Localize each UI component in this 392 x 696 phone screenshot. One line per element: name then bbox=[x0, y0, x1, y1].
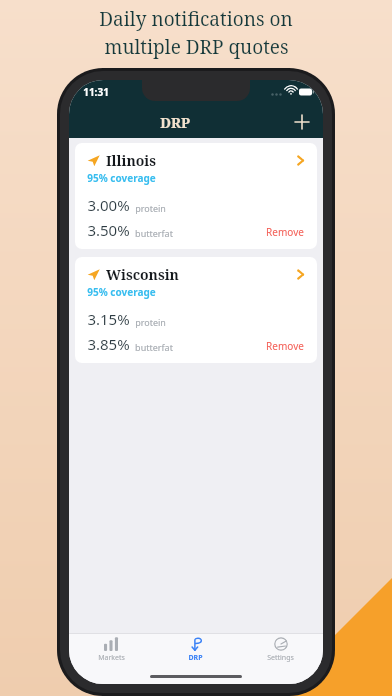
staticText: 3.50% bbox=[87, 220, 130, 240]
staticText: DRP bbox=[188, 653, 203, 663]
staticText: 3.85% bbox=[87, 334, 130, 354]
button[interactable]: DRP bbox=[153, 634, 238, 668]
button[interactable]: Remove bbox=[263, 338, 307, 354]
staticText: Remove bbox=[266, 339, 304, 353]
staticText: Remove bbox=[266, 225, 304, 239]
staticText: Wisconsin bbox=[106, 265, 179, 284]
staticText: 3.00% bbox=[87, 195, 130, 215]
staticText: multiple DRP quotes bbox=[104, 34, 289, 60]
staticText: Illinois bbox=[106, 151, 156, 170]
staticText: butterfat bbox=[135, 341, 173, 353]
button[interactable]: Remove bbox=[263, 224, 307, 240]
staticText: 95% coverage bbox=[87, 285, 156, 299]
staticText: protein bbox=[135, 316, 166, 328]
button[interactable]: Markets bbox=[69, 634, 153, 668]
button[interactable]: Wisconsin bbox=[75, 257, 317, 363]
staticText: 3.15% bbox=[87, 309, 130, 329]
staticText: protein bbox=[135, 202, 166, 214]
button[interactable]: Add quote bbox=[281, 106, 323, 138]
staticText: butterfat bbox=[135, 227, 173, 239]
staticText: Markets bbox=[98, 653, 125, 663]
staticText: DRP bbox=[160, 113, 190, 132]
staticText: 11:31 bbox=[83, 85, 109, 99]
staticText: 95% coverage bbox=[87, 171, 156, 185]
staticText: Daily notifications on bbox=[99, 6, 293, 32]
staticText: Settings bbox=[267, 653, 294, 663]
button[interactable]: Settings bbox=[238, 634, 323, 668]
button[interactable]: Illinois bbox=[75, 143, 317, 249]
